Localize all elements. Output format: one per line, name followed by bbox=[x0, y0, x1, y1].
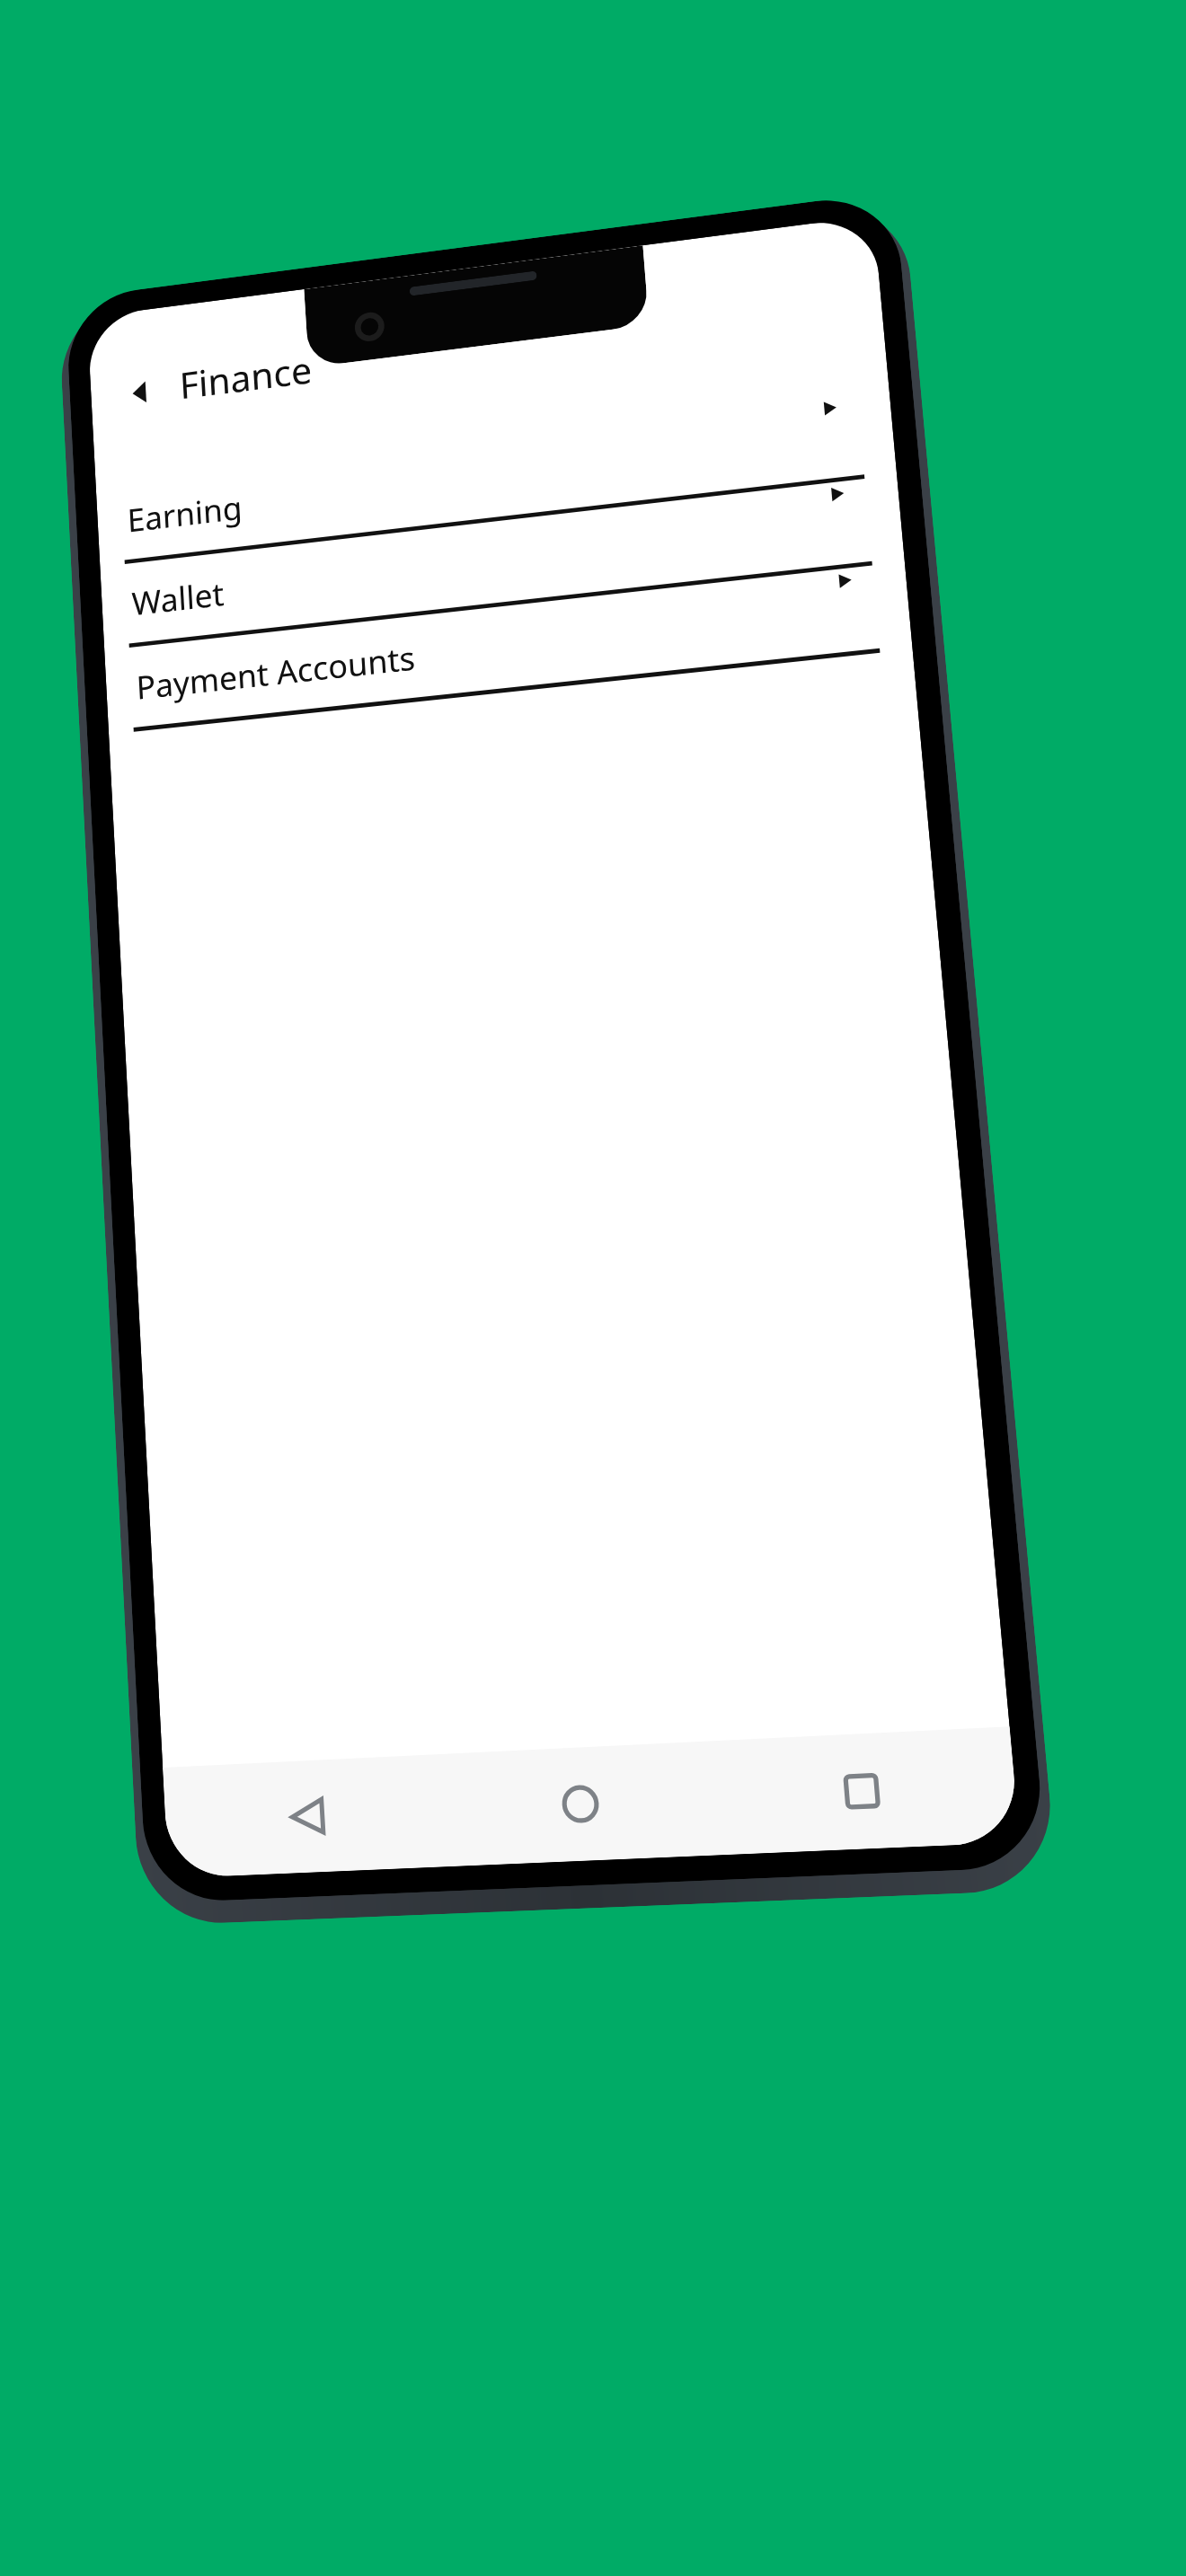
button[interactable]: Wallet bbox=[100, 475, 905, 650]
staticText: Wallet bbox=[131, 571, 225, 625]
button[interactable]: Back bbox=[114, 364, 168, 421]
button[interactable]: Recent apps bbox=[806, 1736, 918, 1846]
button[interactable]: Back bbox=[256, 1763, 360, 1870]
staticText: Finance bbox=[178, 344, 314, 410]
staticText: Payment Accounts bbox=[135, 635, 417, 709]
staticText: Earning bbox=[126, 485, 244, 541]
button[interactable]: Home bbox=[527, 1750, 635, 1858]
button[interactable]: Payment Accounts bbox=[104, 562, 913, 734]
button[interactable]: Earning bbox=[96, 389, 897, 567]
